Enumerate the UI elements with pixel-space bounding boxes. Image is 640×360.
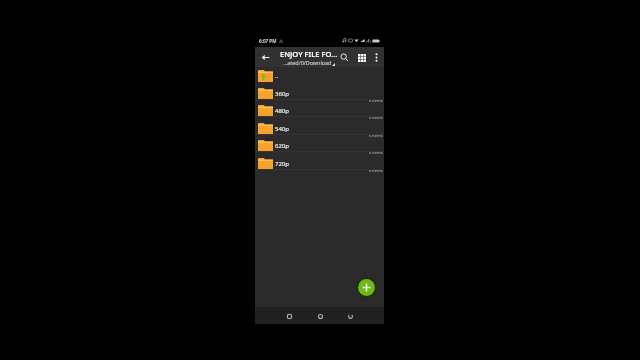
- button[interactable]: Recent apps: [282, 309, 296, 323]
- button[interactable]: 540p: [255, 120, 384, 138]
- staticText: 6:07 PM: [259, 38, 277, 44]
- staticText: 360p: [275, 90, 289, 98]
- staticText: ...ated/0/Download: [283, 59, 332, 66]
- button[interactable]: Back: [343, 309, 357, 323]
- button[interactable]: Add: [356, 277, 377, 298]
- button[interactable]: Home: [313, 309, 327, 323]
- staticText: 6 items: [369, 133, 383, 138]
- staticText: 6 items: [369, 150, 383, 155]
- staticText: 6 items: [369, 168, 383, 173]
- staticText: 480p: [275, 107, 289, 115]
- button[interactable]: Search: [337, 50, 352, 65]
- button[interactable]: More options: [369, 50, 383, 64]
- button[interactable]: Back: [255, 47, 275, 67]
- button[interactable]: 720p: [255, 155, 384, 173]
- staticText: 6 items: [369, 98, 383, 103]
- button[interactable]: 480p: [255, 102, 384, 120]
- button[interactable]: 360p: [255, 85, 384, 103]
- staticText: 720p: [275, 160, 289, 168]
- staticText: 620p: [275, 142, 289, 150]
- staticText: 6 items: [369, 115, 383, 120]
- staticText: ENJOY FILE FO...: [280, 49, 338, 59]
- button[interactable]: ..: [255, 67, 384, 85]
- button[interactable]: Grid view: [354, 50, 369, 65]
- staticText: ..: [275, 72, 279, 80]
- button[interactable]: 620p: [255, 137, 384, 155]
- staticText: 540p: [275, 125, 289, 133]
